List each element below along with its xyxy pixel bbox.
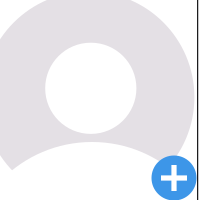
button[interactable]: Add profile photo [0, 0, 200, 200]
